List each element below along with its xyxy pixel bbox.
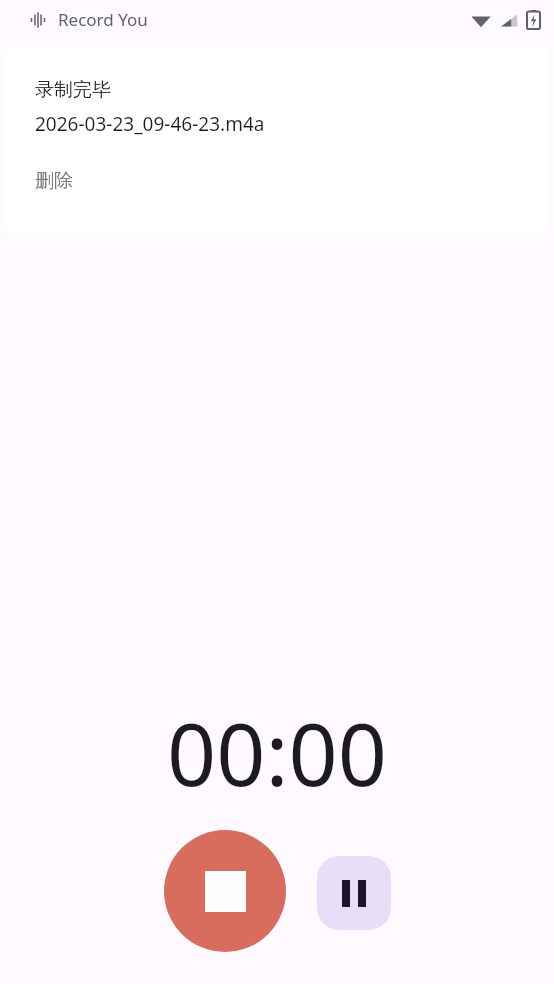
staticText: Record You [58, 8, 148, 31]
staticText: 00:00 [167, 694, 387, 811]
button[interactable]: 删除 [35, 169, 73, 193]
staticText: 删除 [35, 169, 73, 193]
button[interactable]: Stop recording [164, 830, 286, 952]
button[interactable]: Pause recording [317, 856, 391, 930]
button[interactable]: 录制完毕 [5, 46, 549, 233]
staticText: 录制完毕 [35, 78, 111, 102]
staticText: 2026-03-23_09-46-23.m4a [35, 111, 265, 137]
